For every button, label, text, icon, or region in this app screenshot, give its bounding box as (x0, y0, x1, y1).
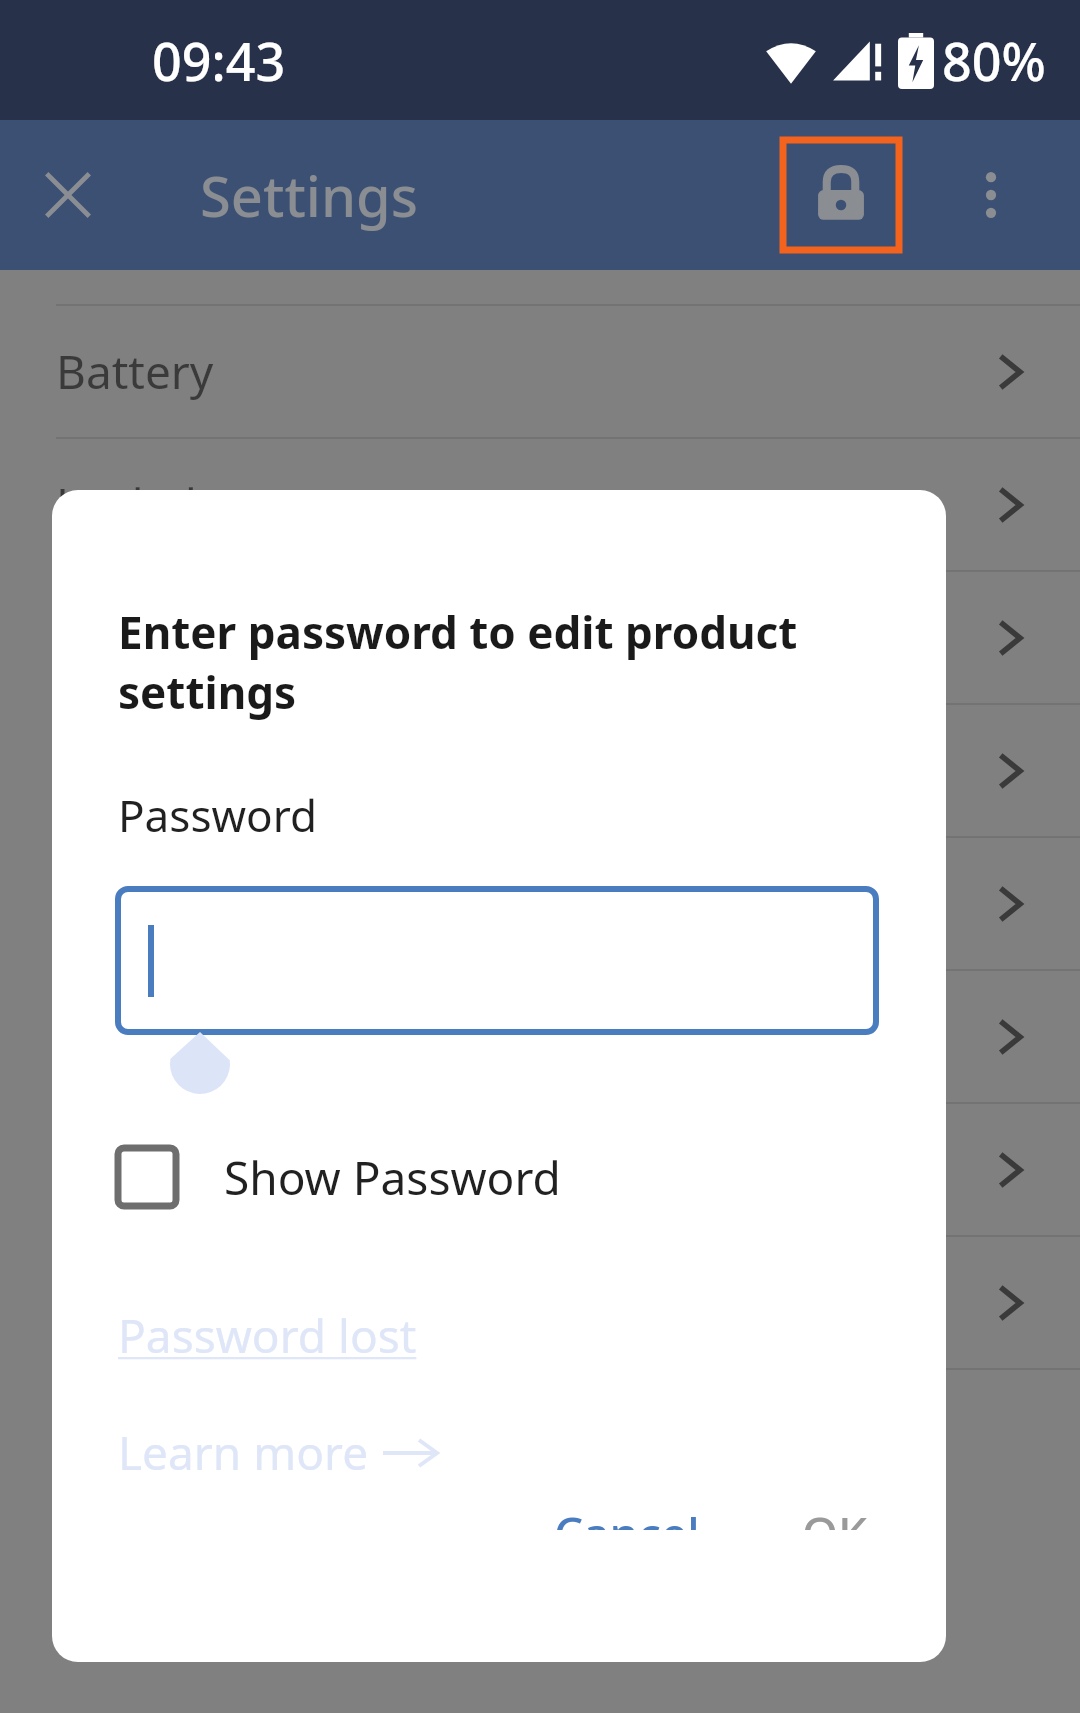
button[interactable]: Show Password (118, 1132, 561, 1222)
staticText: Settings (200, 157, 419, 233)
button[interactable]: Password lost (118, 1304, 417, 1367)
staticText: Leak detect (56, 473, 304, 536)
staticText: Password (118, 785, 318, 845)
staticText: Cancel (554, 1502, 700, 1530)
staticText: OK (802, 1502, 868, 1530)
staticText: Enter password to edit product settings (118, 602, 946, 722)
staticText: Learn more (118, 1421, 369, 1484)
button[interactable] (0, 705, 1080, 836)
button[interactable] (0, 1104, 1080, 1235)
button[interactable]: OK (776, 1484, 894, 1548)
button[interactable]: Cancel (528, 1484, 726, 1548)
button[interactable]: Learn more (118, 1421, 437, 1484)
button[interactable]: Unlock settings (783, 140, 899, 250)
button[interactable]: Leak detect (0, 439, 1080, 570)
button[interactable] (0, 971, 1080, 1102)
button[interactable] (0, 838, 1080, 969)
button[interactable] (0, 572, 1080, 703)
button[interactable]: Close (24, 151, 112, 239)
staticText: Show Password (224, 1146, 561, 1209)
button[interactable]: Battery (0, 306, 1080, 437)
button[interactable] (0, 1237, 1080, 1368)
staticText: 09:43 (152, 25, 286, 96)
button[interactable] (118, 889, 876, 1032)
button[interactable]: More options (947, 151, 1035, 239)
staticText: 80% (942, 25, 1046, 96)
staticText: Battery (56, 340, 214, 403)
